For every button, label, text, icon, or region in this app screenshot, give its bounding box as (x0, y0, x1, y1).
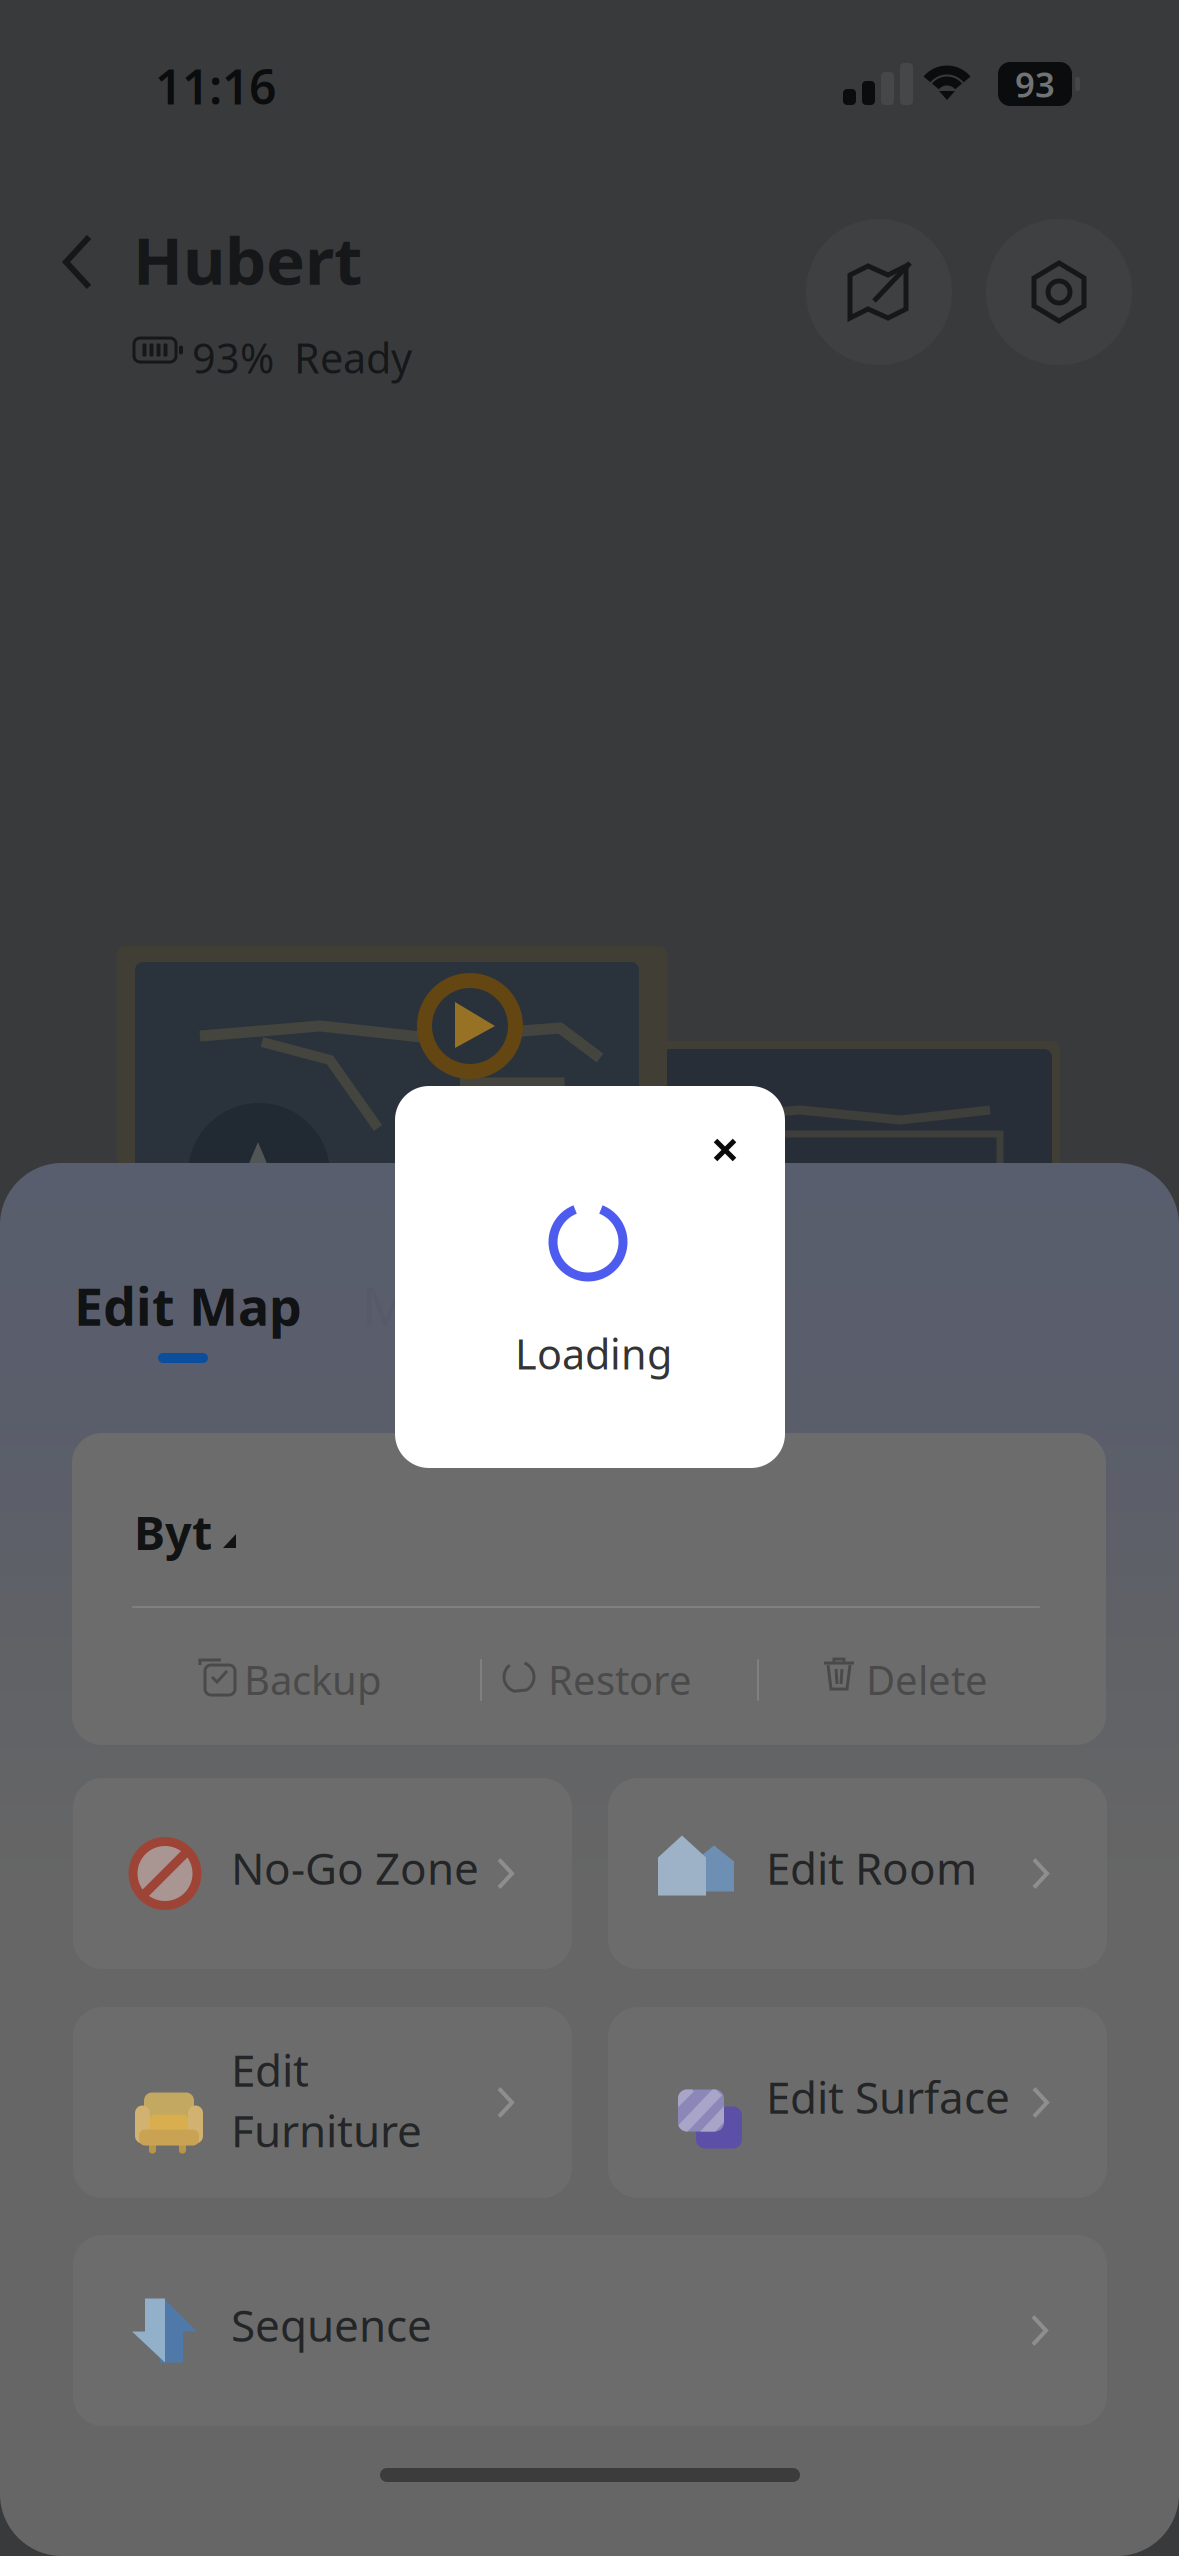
staticText: Hubert (133, 216, 362, 303)
button[interactable]: Settings (986, 219, 1132, 365)
staticText: Edit Room (766, 1838, 977, 1897)
button[interactable]: Edit Map (74, 1271, 334, 1391)
staticText: Edit Surface (766, 2067, 1010, 2126)
button[interactable]: Edit Room (608, 1778, 1107, 1969)
staticText: Backup (244, 1653, 382, 1706)
button[interactable]: M (362, 1271, 442, 1371)
button[interactable]: Back (48, 220, 107, 304)
staticText: 93 (1015, 61, 1055, 107)
button[interactable]: Edit Surface (608, 2007, 1107, 2198)
staticText: Ready (294, 330, 412, 385)
staticText: Furniture (231, 2101, 422, 2159)
staticText: Edit Map (74, 1271, 302, 1340)
button[interactable]: Restore (452, 1631, 752, 1727)
staticText: M (362, 1271, 409, 1340)
button[interactable]: Edit map (806, 219, 952, 365)
button[interactable]: Sequence (73, 2235, 1107, 2426)
staticText: 93% (192, 330, 274, 385)
staticText: Sequence (231, 2295, 432, 2354)
button[interactable]: Edit (73, 2007, 572, 2198)
staticText: Delete (866, 1653, 988, 1706)
staticText: 11:16 (155, 54, 276, 118)
staticText: Edit (231, 2040, 309, 2099)
staticText: No-Go Zone (231, 1838, 479, 1897)
button[interactable]: Backup (144, 1631, 444, 1727)
button[interactable]: Close (688, 1113, 762, 1187)
button[interactable]: Delete (770, 1631, 1070, 1727)
button[interactable]: No-Go Zone (73, 1778, 572, 1969)
staticText: Byt (134, 1501, 212, 1563)
staticText: Restore (548, 1653, 692, 1706)
staticText: Loading (515, 1326, 672, 1381)
